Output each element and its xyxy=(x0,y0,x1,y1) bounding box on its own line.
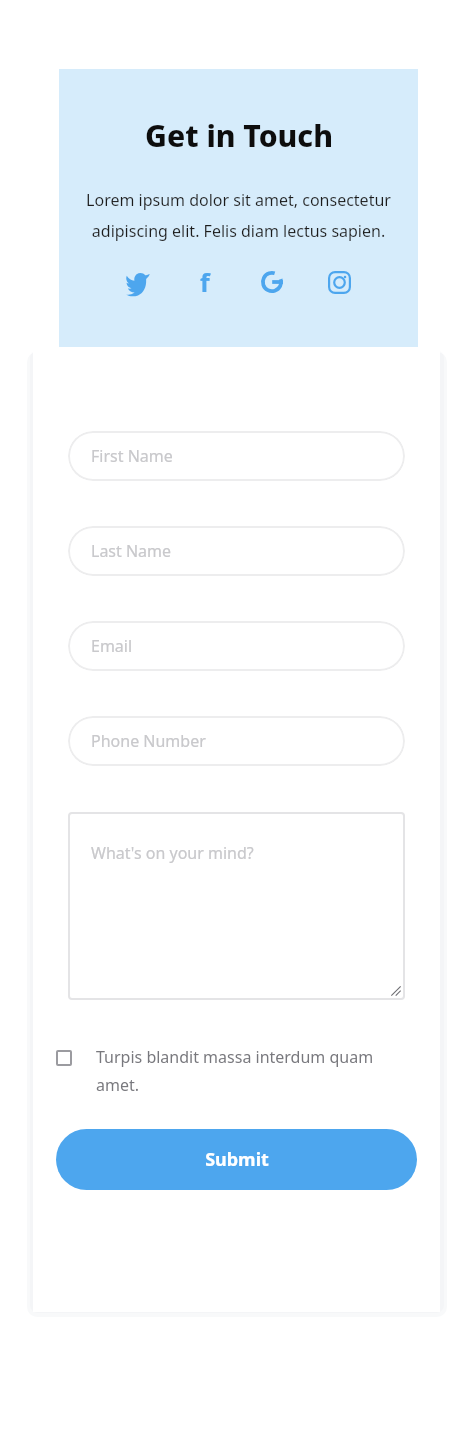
button[interactable]: Facebook xyxy=(188,265,222,299)
button[interactable]: Submit xyxy=(56,1129,417,1190)
button[interactable]: Google xyxy=(255,265,289,299)
button[interactable]: Phone Number xyxy=(68,716,405,766)
staticText: Email xyxy=(91,635,133,657)
staticText: Last Name xyxy=(91,540,172,562)
button[interactable]: Email xyxy=(68,621,405,671)
button[interactable]: Turpis blandit massa interdum quam amet. xyxy=(56,1046,405,1096)
button[interactable]: What's on your mind? xyxy=(68,812,405,1000)
staticText: Get in Touch xyxy=(145,115,333,156)
button[interactable]: Instagram xyxy=(322,265,356,299)
staticText: Submit xyxy=(205,1147,269,1172)
button[interactable]: Twitter xyxy=(121,265,155,299)
staticText: Phone Number xyxy=(91,730,206,752)
staticText: Turpis blandit massa interdum quam amet. xyxy=(96,1046,405,1096)
button[interactable]: Last Name xyxy=(68,526,405,576)
staticText: First Name xyxy=(91,445,173,467)
staticText: Lorem ipsum dolor sit amet, consectetur … xyxy=(77,189,400,241)
staticText: f xyxy=(200,265,210,299)
button[interactable]: First Name xyxy=(68,431,405,481)
staticText: What's on your mind? xyxy=(91,842,254,864)
